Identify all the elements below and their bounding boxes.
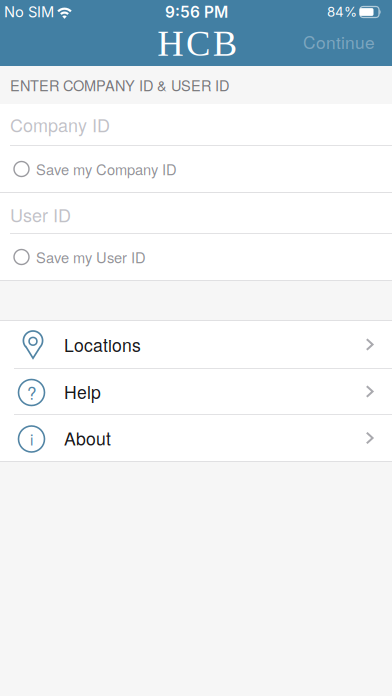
staticText: Company ID (10, 112, 110, 137)
staticText: Locations (64, 332, 141, 357)
staticText: i (30, 428, 33, 450)
button[interactable]: i (0, 415, 392, 461)
staticText: Help (64, 379, 101, 404)
button[interactable]: Company ID (0, 104, 392, 145)
staticText: HCB (157, 23, 237, 64)
button[interactable]: Save my User ID (0, 234, 392, 280)
staticText: 9:56 PM (165, 3, 228, 21)
button[interactable]: Save my Company ID (0, 146, 392, 192)
staticText: Continue (303, 29, 375, 54)
staticText: No SIM (4, 3, 54, 21)
button[interactable]: Locations (0, 321, 392, 368)
staticText: Save my User ID (36, 246, 146, 267)
button[interactable]: ? (0, 369, 392, 414)
staticText: 84% (327, 4, 357, 20)
staticText: ? (27, 380, 36, 405)
button[interactable]: Continue (303, 29, 392, 54)
staticText: User ID (10, 202, 71, 227)
button[interactable]: User ID (0, 193, 392, 233)
staticText: Save my Company ID (36, 158, 177, 179)
staticText: ENTER COMPANY ID & USER ID (10, 75, 229, 95)
staticText: About (64, 425, 111, 451)
